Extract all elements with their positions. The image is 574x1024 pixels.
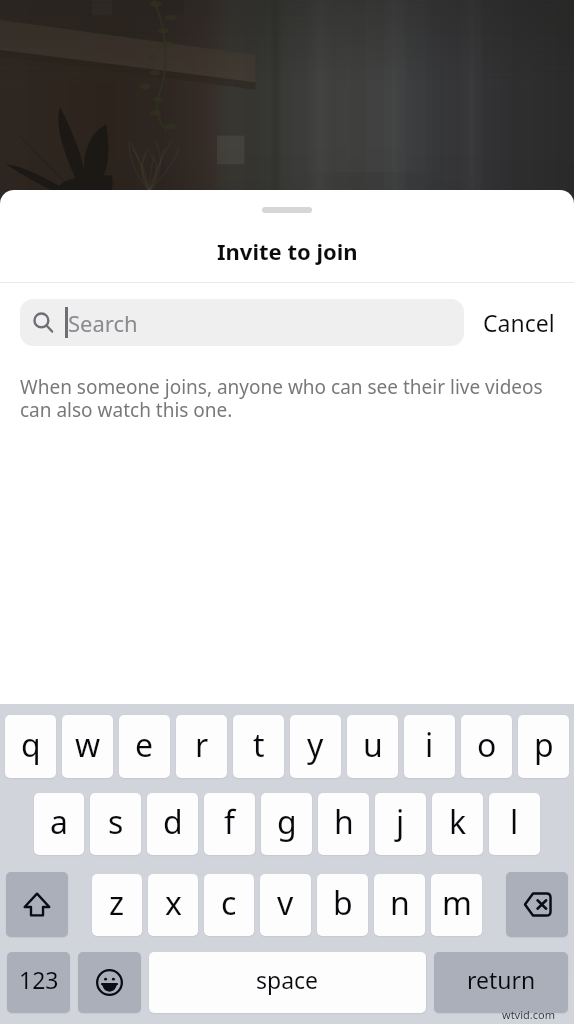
button[interactable]: n: [374, 874, 425, 936]
staticText: o: [477, 723, 497, 767]
staticText: r: [195, 723, 209, 767]
button[interactable]: j: [375, 793, 426, 855]
button[interactable]: v: [260, 874, 311, 936]
staticText: h: [334, 800, 354, 844]
button[interactable]: Shift: [6, 872, 68, 937]
button[interactable]: o: [461, 715, 512, 778]
button[interactable]: space: [149, 952, 426, 1013]
button[interactable]: f: [204, 793, 255, 855]
button[interactable]: u: [347, 715, 398, 778]
staticText: b: [333, 881, 353, 925]
staticText: d: [163, 800, 183, 844]
staticText: return: [467, 964, 536, 995]
staticText: f: [224, 800, 236, 844]
staticText: p: [534, 723, 554, 767]
staticText: c: [221, 881, 237, 925]
button[interactable]: h: [318, 793, 369, 855]
staticText: When someone joins, anyone who can see t…: [20, 374, 556, 423]
button[interactable]: s: [90, 793, 141, 855]
staticText: Cancel: [483, 307, 555, 338]
button[interactable]: x: [148, 874, 198, 936]
button[interactable]: 123: [7, 952, 70, 1013]
button[interactable]: b: [317, 874, 368, 936]
button[interactable]: m: [431, 874, 482, 936]
button[interactable]: Cancel: [464, 299, 574, 346]
staticText: Invite to join: [217, 236, 358, 266]
button[interactable]: Emoji: [78, 952, 141, 1013]
staticText: e: [135, 723, 154, 767]
staticText: k: [449, 800, 467, 844]
staticText: m: [442, 881, 472, 925]
button[interactable]: e: [119, 715, 170, 778]
button[interactable]: t: [233, 715, 284, 778]
staticText: g: [277, 800, 297, 844]
button[interactable]: y: [290, 715, 341, 778]
staticText: a: [50, 800, 68, 844]
staticText: x: [165, 881, 182, 925]
staticText: Search: [68, 308, 138, 338]
staticText: v: [277, 881, 294, 925]
button[interactable]: p: [518, 715, 569, 778]
staticText: 123: [19, 964, 59, 995]
staticText: u: [363, 723, 383, 767]
button[interactable]: k: [432, 793, 483, 855]
staticText: y: [307, 723, 324, 767]
staticText: w: [75, 723, 101, 767]
staticText: l: [510, 800, 519, 844]
staticText: q: [21, 723, 41, 767]
staticText: wtvid.com: [502, 1007, 555, 1022]
button[interactable]: w: [62, 715, 113, 778]
button[interactable]: c: [204, 874, 254, 936]
button[interactable]: r: [176, 715, 227, 778]
button[interactable]: return: [434, 952, 568, 1013]
button[interactable]: z: [92, 874, 142, 936]
button[interactable]: a: [34, 793, 84, 855]
button[interactable]: Search: [20, 299, 464, 346]
staticText: i: [425, 723, 434, 767]
button[interactable]: q: [5, 715, 56, 778]
button[interactable]: d: [147, 793, 198, 855]
staticText: t: [253, 723, 265, 767]
staticText: space: [256, 964, 319, 995]
staticText: n: [390, 881, 410, 925]
button[interactable]: i: [404, 715, 455, 778]
staticText: s: [108, 800, 124, 844]
button[interactable]: Backspace: [506, 872, 568, 937]
button[interactable]: l: [489, 793, 540, 855]
staticText: z: [109, 881, 125, 925]
staticText: j: [396, 800, 405, 844]
button[interactable]: g: [261, 793, 312, 855]
